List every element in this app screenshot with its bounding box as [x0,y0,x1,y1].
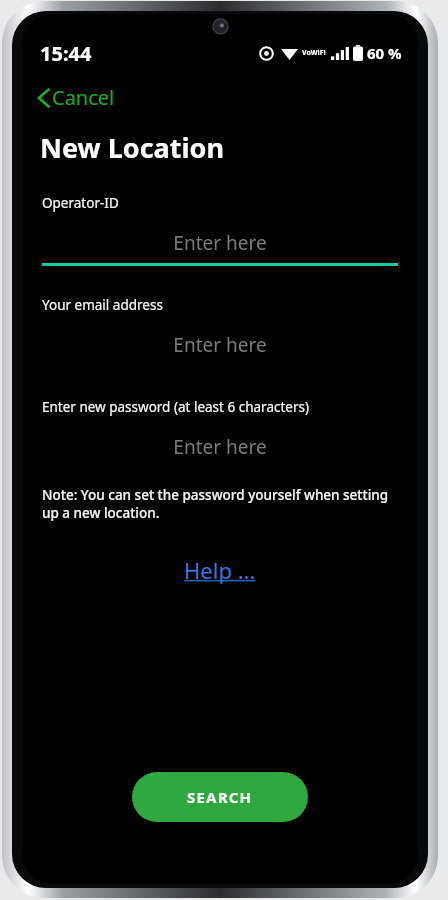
button[interactable]: Enter here [42,230,398,256]
staticText: 15:44 [40,40,92,67]
button[interactable]: Enter here [42,332,398,358]
staticText: Note: You can set the password yourself … [42,486,398,522]
staticText: 60 % [367,43,402,63]
button[interactable]: Help ... [176,552,264,588]
button[interactable]: Enter here [42,434,398,460]
staticText: Operator-ID [42,194,119,212]
button[interactable]: Cancel [22,82,129,113]
staticText: VoWiFi [302,48,326,58]
staticText: New Location [40,129,224,166]
staticText: Help ... [184,555,256,585]
staticText: SEARCH [187,787,253,807]
staticText: Your email address [42,296,163,314]
staticText: Enter here [42,332,398,358]
staticText: Enter here [42,230,398,256]
staticText: Cancel [52,84,115,111]
staticText: Enter new password (at least 6 character… [42,398,310,416]
button[interactable]: SEARCH [132,772,308,822]
staticText: Enter here [42,434,398,460]
